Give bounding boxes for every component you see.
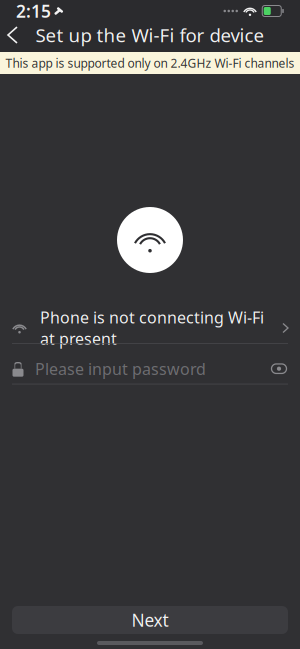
staticText: Phone is not connecting Wi-Fi at present — [40, 307, 264, 349]
staticText: Please input password — [35, 358, 206, 379]
staticText: 2:15 — [16, 0, 51, 22]
button[interactable]: Phone is not connecting Wi-Fi at present — [0, 313, 300, 344]
button[interactable]: Show password — [262, 358, 288, 380]
staticText: This app is supported only on 2.4GHz Wi-… — [5, 55, 294, 71]
button[interactable]: Next — [12, 606, 288, 634]
button[interactable]: Back — [0, 21, 25, 49]
staticText: Set up the Wi-Fi for device — [35, 23, 264, 47]
staticText: Next — [131, 608, 168, 631]
